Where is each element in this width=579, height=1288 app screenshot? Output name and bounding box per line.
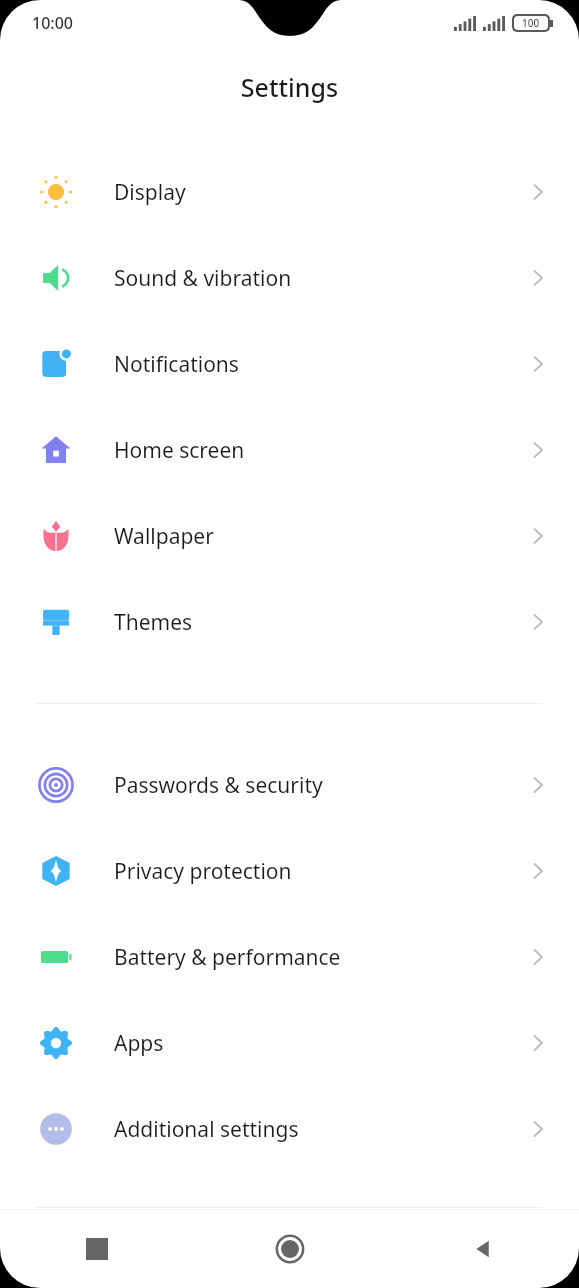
staticText: 10:00: [32, 12, 73, 34]
button[interactable]: Notifications: [0, 321, 579, 407]
button[interactable]: Back: [386, 1210, 579, 1288]
button[interactable]: Passwords & security: [0, 742, 579, 828]
staticText: Themes: [114, 608, 193, 637]
button[interactable]: Themes: [0, 579, 579, 665]
staticText: Privacy protection: [114, 857, 292, 886]
button[interactable]: Home: [193, 1210, 386, 1288]
staticText: Wallpaper: [114, 522, 214, 551]
staticText: 100: [522, 16, 540, 30]
button[interactable]: Wallpaper: [0, 493, 579, 579]
staticText: Battery & performance: [114, 943, 341, 972]
staticText: Display: [114, 178, 186, 207]
staticText: Settings: [0, 70, 579, 104]
button[interactable]: Battery & performance: [0, 914, 579, 1000]
staticText: Home screen: [114, 436, 245, 465]
button[interactable]: Additional settings: [0, 1086, 579, 1172]
button[interactable]: Home screen: [0, 407, 579, 493]
button[interactable]: Privacy protection: [0, 828, 579, 914]
staticText: Passwords & security: [114, 771, 323, 800]
button[interactable]: Recent apps: [0, 1210, 193, 1288]
staticText: Sound & vibration: [114, 264, 292, 293]
button[interactable]: Apps: [0, 1000, 579, 1086]
button[interactable]: Display: [0, 149, 579, 235]
staticText: Apps: [114, 1029, 164, 1058]
staticText: Additional settings: [114, 1115, 299, 1144]
staticText: Notifications: [114, 350, 239, 379]
button[interactable]: Sound & vibration: [0, 235, 579, 321]
